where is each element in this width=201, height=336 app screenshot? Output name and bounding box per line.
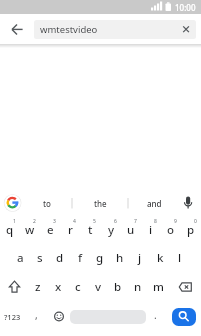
staticText: u (127, 222, 135, 238)
button[interactable]: w (20, 216, 40, 244)
staticText: s (37, 250, 43, 266)
staticText: j (138, 250, 142, 266)
button[interactable] (70, 310, 146, 324)
staticText: w (25, 222, 35, 238)
button[interactable]: . (148, 301, 162, 329)
staticText: z (35, 279, 41, 295)
button[interactable] (1, 273, 28, 301)
button[interactable]: h (110, 244, 130, 272)
staticText: 6 (114, 218, 117, 225)
staticText: the (94, 198, 107, 209)
staticText: r (68, 222, 73, 238)
button[interactable] (172, 308, 196, 326)
button[interactable]: the (74, 194, 126, 212)
staticText: 3 (53, 218, 56, 225)
staticText: f (78, 250, 83, 266)
staticText: q (6, 222, 14, 238)
button[interactable]: g (90, 244, 110, 272)
staticText: k (157, 250, 164, 266)
button[interactable]: m (148, 273, 168, 301)
staticText: 7 (134, 218, 137, 225)
button[interactable]: l (170, 244, 190, 272)
button[interactable] (3, 194, 23, 212)
staticText: d (56, 250, 64, 266)
button[interactable]: e (40, 216, 60, 244)
button[interactable]: k (150, 244, 170, 272)
staticText: v (95, 279, 102, 295)
button[interactable]: r (60, 216, 80, 244)
staticText: l (178, 250, 182, 266)
staticText: p (187, 222, 195, 238)
button[interactable]: u (121, 216, 141, 244)
staticText: h (116, 250, 124, 266)
button[interactable]: c (68, 273, 88, 301)
button[interactable]: and (130, 194, 178, 212)
button[interactable] (178, 21, 195, 38)
staticText: 0 (194, 218, 197, 225)
staticText: x (55, 279, 62, 295)
button[interactable]: n (128, 273, 148, 301)
button[interactable] (173, 273, 200, 301)
staticText: g (96, 250, 104, 266)
staticText: o (167, 222, 175, 238)
button[interactable] (34, 20, 196, 39)
button[interactable]: to (25, 194, 69, 212)
button[interactable] (2, 16, 30, 43)
staticText: . (154, 308, 157, 322)
button[interactable]: p (181, 216, 201, 244)
button[interactable]: x (48, 273, 68, 301)
staticText: , (35, 308, 38, 322)
staticText: ?123 (4, 312, 21, 322)
button[interactable]: , (28, 301, 44, 329)
staticText: m (153, 279, 164, 295)
staticText: t (88, 222, 93, 238)
staticText: to (43, 198, 51, 209)
staticText: wmtestvideo (40, 23, 98, 36)
staticText: 1 (13, 218, 16, 225)
staticText: and (147, 198, 162, 209)
staticText: e (47, 222, 54, 238)
button[interactable]: b (108, 273, 128, 301)
button[interactable]: t (80, 216, 100, 244)
button[interactable]: d (50, 244, 70, 272)
button[interactable]: z (28, 273, 48, 301)
staticText: i (149, 222, 153, 238)
staticText: 9 (174, 218, 177, 225)
button[interactable]: f (70, 244, 90, 272)
staticText: a (17, 250, 24, 266)
staticText: 4 (73, 218, 76, 225)
button[interactable]: q (0, 216, 20, 244)
button[interactable]: y (101, 216, 121, 244)
button[interactable]: j (130, 244, 150, 272)
staticText: c (75, 279, 81, 295)
staticText: 5 (93, 218, 96, 225)
staticText: 8 (154, 218, 157, 225)
button[interactable]: ?123 (1, 303, 23, 331)
button[interactable] (50, 303, 68, 331)
staticText: 2 (33, 218, 36, 225)
button[interactable]: i (141, 216, 161, 244)
staticText: y (108, 222, 115, 238)
staticText: b (114, 279, 122, 295)
button[interactable] (180, 194, 197, 212)
button[interactable]: o (161, 216, 181, 244)
button[interactable]: v (88, 273, 108, 301)
staticText: 10:00 (175, 2, 196, 13)
staticText: n (134, 279, 142, 295)
button[interactable]: a (10, 244, 30, 272)
button[interactable]: s (30, 244, 50, 272)
